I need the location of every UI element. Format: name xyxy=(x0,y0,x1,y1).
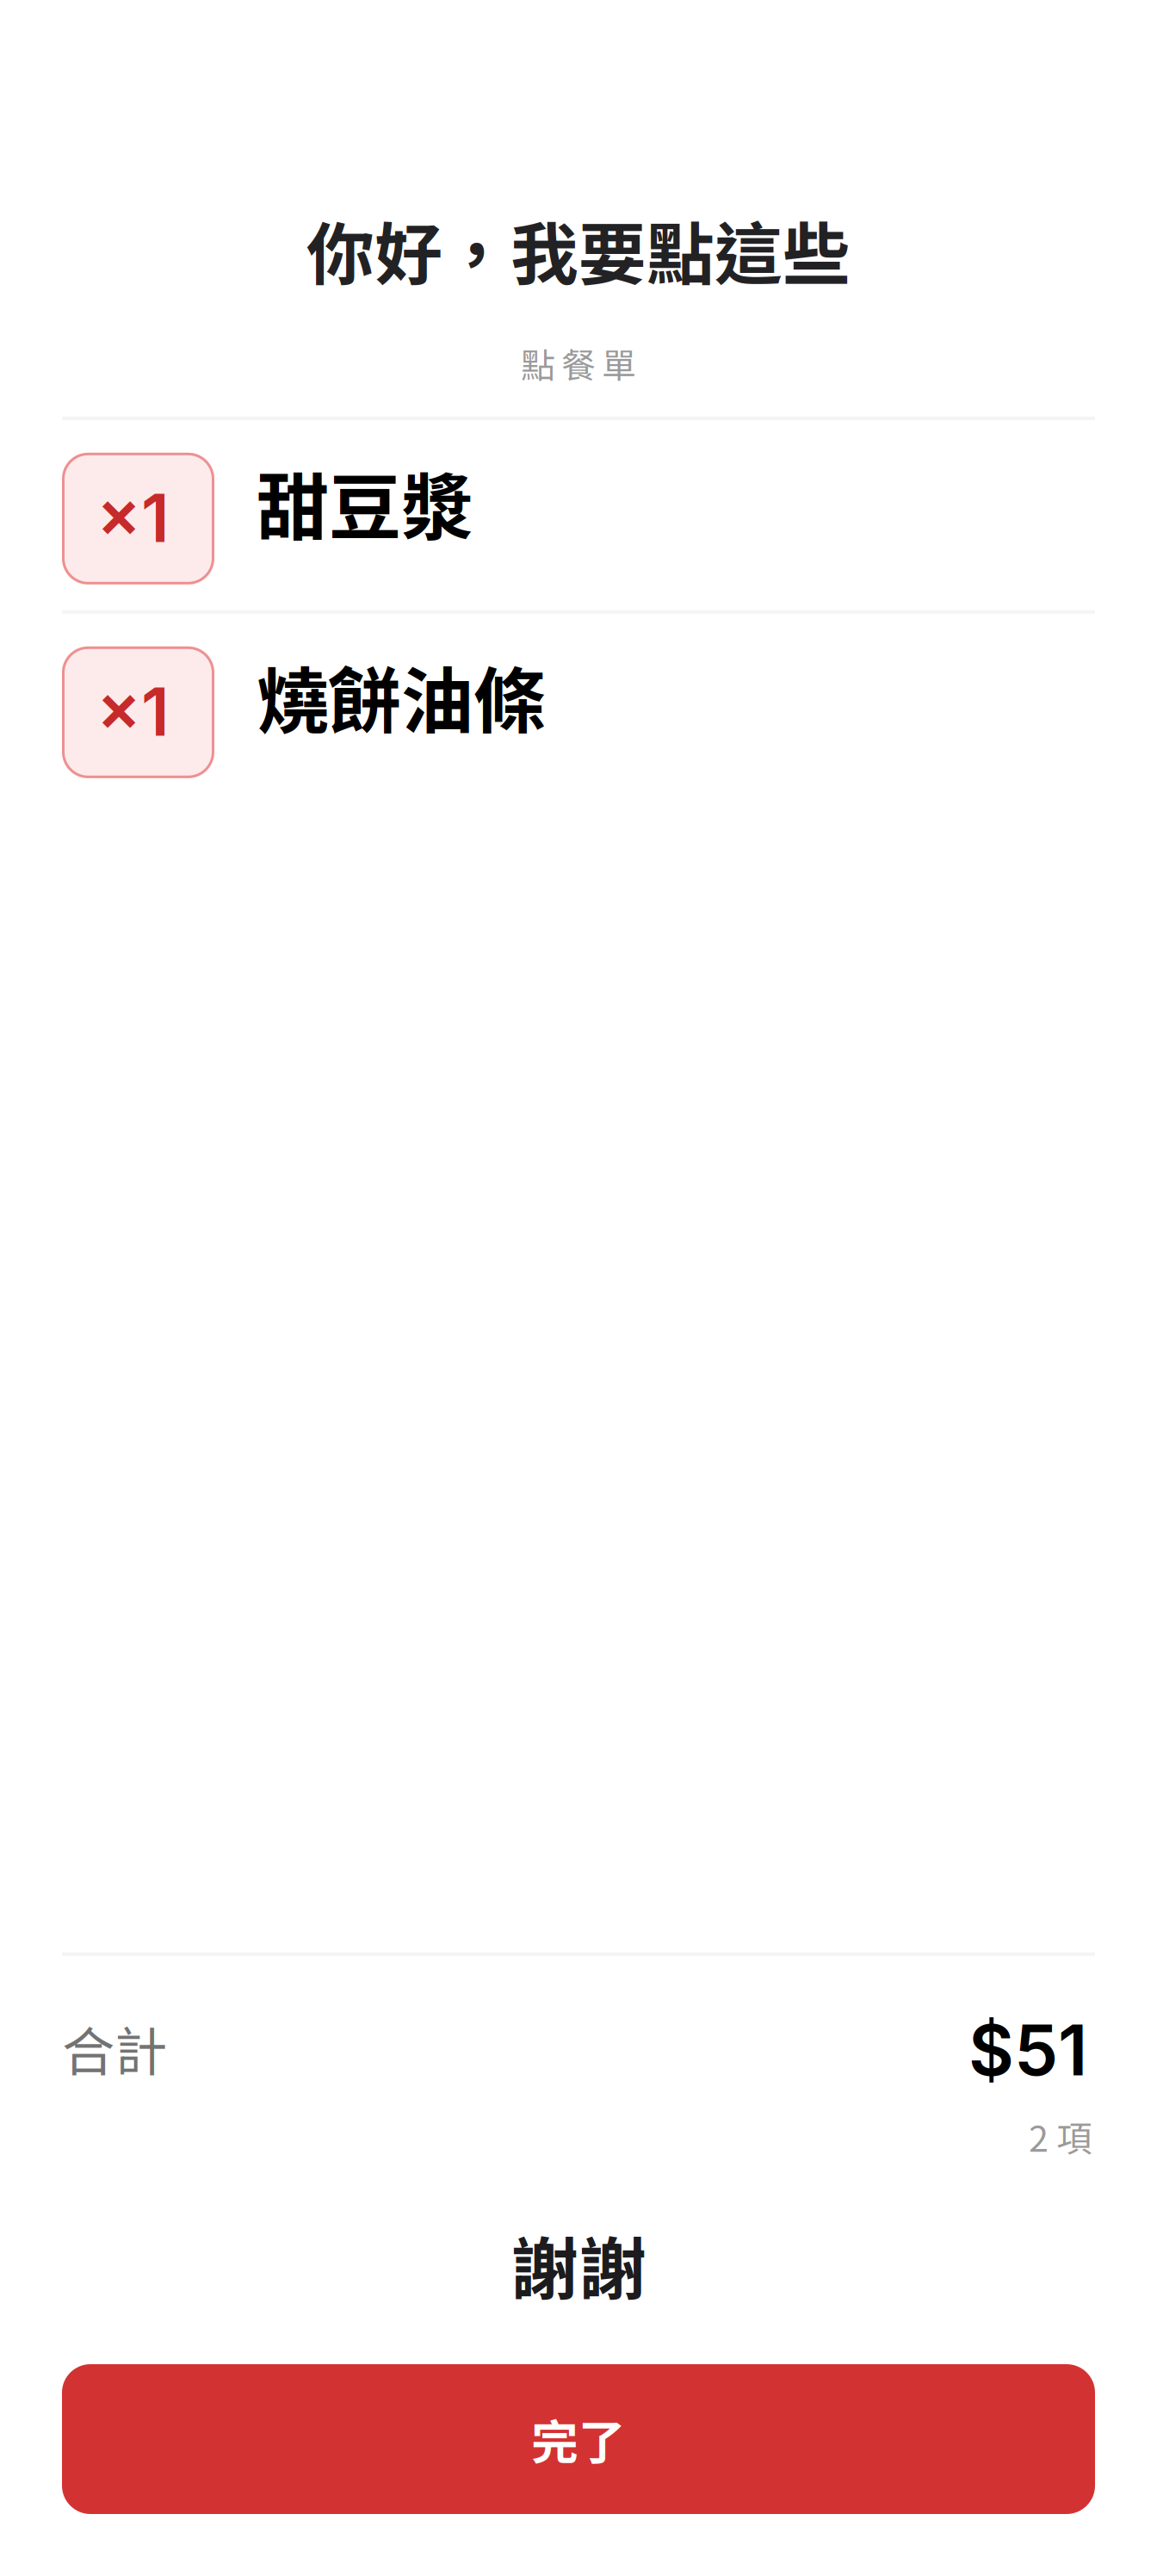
staticText: 甜豆漿 xyxy=(257,450,473,555)
staticText: 合計 xyxy=(62,2010,167,2086)
staticText: 謝謝 xyxy=(510,2215,647,2313)
staticText: $51 xyxy=(968,2008,1087,2092)
button[interactable]: 完了 xyxy=(62,2364,1095,2514)
staticText: 你好，我要點這些 xyxy=(306,201,851,299)
staticText: ×1 xyxy=(96,671,170,752)
staticText: ×1 xyxy=(96,477,170,558)
button[interactable]: ×1 xyxy=(62,614,1095,804)
button[interactable]: ×1 xyxy=(62,420,1095,610)
staticText: 燒餅油條 xyxy=(257,644,546,748)
staticText: 完了 xyxy=(531,2405,626,2473)
staticText: 點餐單 xyxy=(521,338,636,388)
staticText: 2 項 xyxy=(1029,2110,1092,2162)
